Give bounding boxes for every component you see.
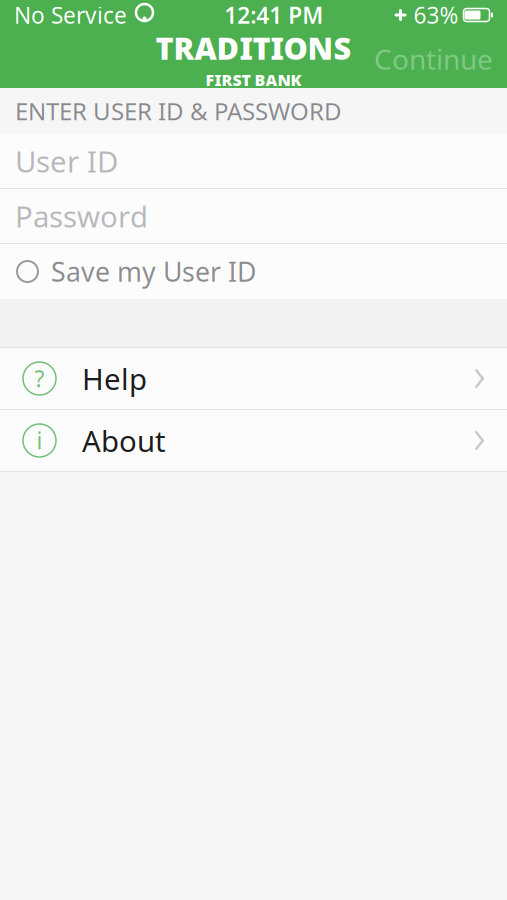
- staticText: Help: [82, 359, 147, 398]
- staticText: ?: [34, 363, 44, 393]
- button[interactable]: i: [0, 410, 507, 471]
- staticText: FIRST BANK: [205, 69, 301, 90]
- staticText: ENTER USER ID & PASSWORD: [15, 95, 342, 127]
- staticText: User ID: [15, 141, 118, 180]
- staticText: No Service: [14, 0, 127, 30]
- staticText: TRADITIONS: [155, 27, 351, 68]
- staticText: 63%: [413, 0, 458, 30]
- staticText: i: [36, 425, 42, 455]
- button[interactable]: Continue: [360, 30, 507, 88]
- staticText: Save my User ID: [51, 254, 256, 289]
- staticText: 12:41 PM: [224, 0, 323, 30]
- button[interactable]: ?: [0, 348, 507, 409]
- button[interactable]: Save my User ID: [0, 244, 507, 299]
- staticText: Continue: [374, 40, 493, 78]
- staticText: Password: [15, 196, 148, 235]
- staticText: About: [82, 421, 166, 460]
